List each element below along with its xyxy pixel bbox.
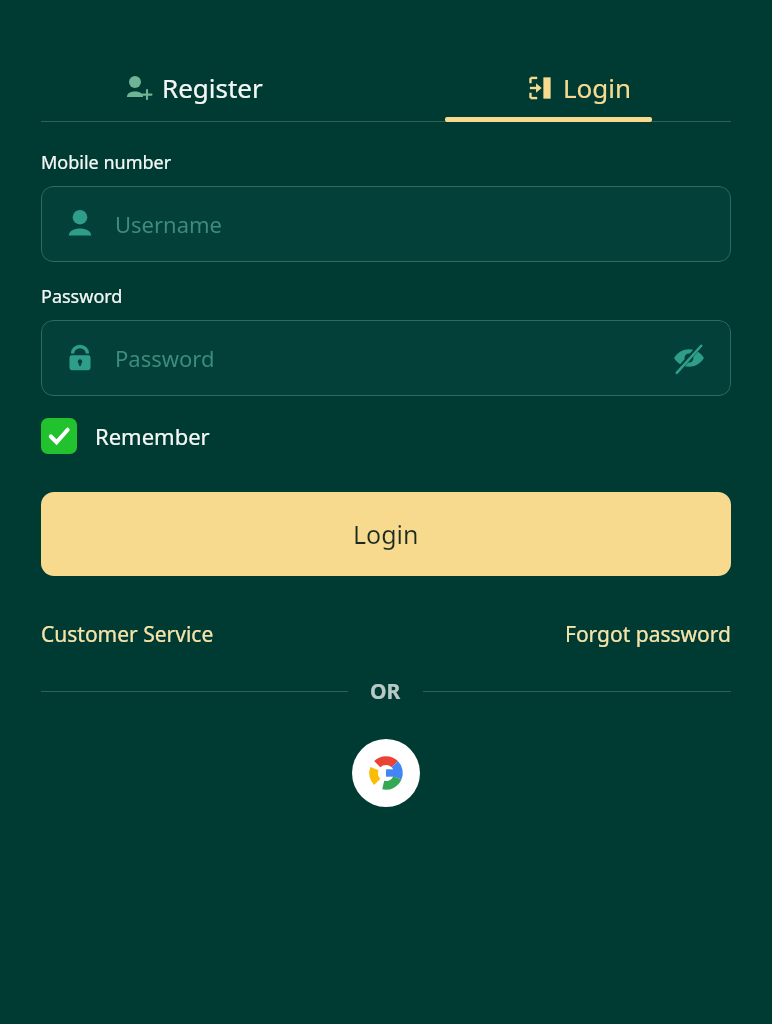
button[interactable]: Login (41, 492, 731, 576)
staticText: Password (41, 284, 123, 309)
button[interactable]: Login (386, 52, 772, 122)
button[interactable]: Username (41, 186, 731, 262)
button[interactable]: Customer Service (41, 620, 214, 649)
button[interactable]: Show password (669, 338, 709, 378)
staticText: Customer Service (41, 620, 214, 649)
staticText: Password (115, 343, 669, 373)
staticText: OR (370, 677, 401, 706)
button[interactable]: Register (0, 52, 386, 122)
staticText: Username (115, 209, 709, 239)
staticText: Mobile number (41, 150, 172, 175)
staticText: Remember (95, 421, 210, 451)
button[interactable]: Password (41, 320, 731, 396)
button[interactable]: Forgot password (565, 620, 731, 649)
staticText: Forgot password (565, 620, 731, 649)
button[interactable]: Remember (41, 418, 210, 454)
staticText: Login (353, 517, 419, 551)
staticText: Register (162, 70, 263, 105)
staticText: Login (563, 70, 632, 105)
button[interactable]: Sign in with Google (352, 739, 420, 807)
